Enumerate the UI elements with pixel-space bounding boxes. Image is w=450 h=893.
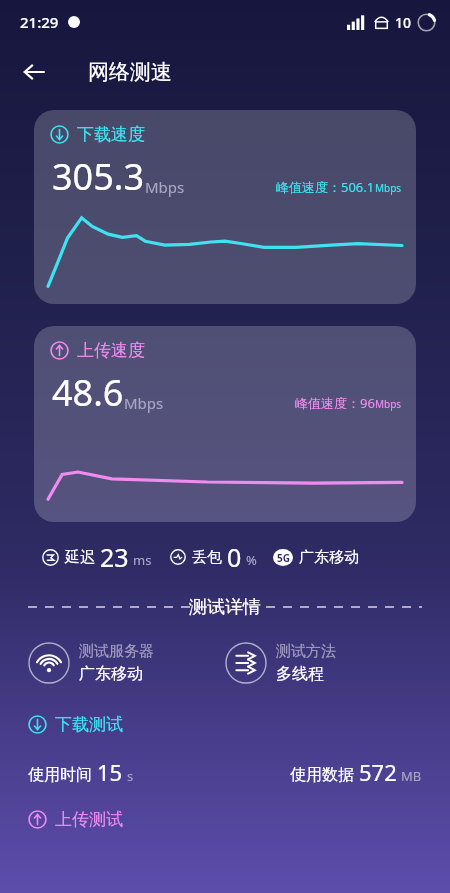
- other: Packet loss: [170, 549, 186, 565]
- staticText: Mbps: [375, 181, 402, 195]
- button[interactable]: 测试服务器: [28, 642, 225, 684]
- staticText: 广东移动: [299, 548, 359, 567]
- staticText: %: [246, 551, 257, 569]
- staticText: 305.3: [52, 152, 145, 201]
- staticText: 峰值速度：506.1: [276, 178, 375, 196]
- staticText: 48.6: [52, 368, 124, 417]
- staticText: 下载测试: [55, 714, 123, 735]
- staticText: 上传测试: [55, 809, 123, 830]
- staticText: Mbps: [375, 397, 402, 411]
- button[interactable]: 测试方法: [225, 642, 422, 684]
- staticText: 5G: [277, 551, 290, 565]
- staticText: MB: [401, 767, 422, 785]
- staticText: 丢包: [192, 548, 222, 567]
- other: 测试服务器: [28, 642, 70, 684]
- other: Upload: [28, 810, 47, 829]
- staticText: 使用时间: [28, 765, 92, 785]
- staticText: 10: [395, 13, 412, 32]
- other: Download: [50, 125, 69, 144]
- staticText: 延迟: [65, 548, 95, 567]
- staticText: Mbps: [145, 177, 185, 197]
- other: Upload: [50, 341, 69, 360]
- staticText: 测试方法: [276, 642, 336, 661]
- staticText: 0: [227, 540, 242, 574]
- staticText: s: [127, 767, 134, 785]
- staticText: 测试详情: [189, 596, 261, 618]
- staticText: 上传速度: [77, 340, 145, 361]
- staticText: 下载速度: [77, 124, 145, 145]
- staticText: 使用数据: [290, 765, 354, 785]
- staticText: 测试服务器: [79, 642, 154, 661]
- staticText: 572: [359, 757, 397, 787]
- staticText: 15: [97, 757, 123, 787]
- staticText: 多线程: [276, 664, 324, 684]
- staticText: ms: [133, 551, 152, 569]
- staticText: 广东移动: [79, 664, 143, 684]
- staticText: Mbps: [124, 393, 164, 413]
- other: Latency: [42, 549, 59, 566]
- staticText: 网络测速: [88, 59, 172, 85]
- other: 测试方法: [225, 642, 267, 684]
- staticText: 峰值速度：96: [295, 394, 375, 412]
- button[interactable]: Upload: [34, 326, 416, 522]
- staticText: 23: [100, 540, 129, 574]
- button[interactable]: Download: [34, 110, 416, 304]
- staticText: 21:29: [20, 12, 59, 32]
- other: Download: [28, 715, 47, 734]
- button[interactable]: Back: [12, 50, 56, 94]
